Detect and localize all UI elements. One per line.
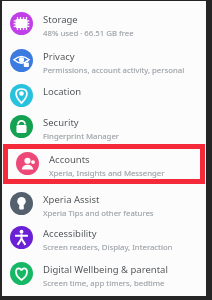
staticText: Screen readers, Display, Interaction con… — [43, 242, 202, 253]
staticText: Screen time, app timers, bedtime schedul… — [43, 278, 202, 289]
button[interactable]: Accessibility — [2, 222, 206, 258]
button[interactable]: Accounts — [8, 149, 200, 179]
button[interactable]: Location — [2, 80, 206, 111]
staticText: Accessibility — [43, 227, 97, 240]
button[interactable]: Storage — [2, 8, 206, 45]
button[interactable]: Privacy — [2, 45, 206, 80]
staticText: Accounts — [49, 153, 90, 166]
staticText: 48% used · 66.51 GB free — [43, 28, 134, 39]
button[interactable]: Xperia Assist — [2, 184, 206, 222]
staticText: Storage — [43, 13, 78, 26]
staticText: Fingerprint Manager — [43, 131, 120, 142]
staticText: Security — [43, 116, 79, 129]
staticText: Xperia Tips and other features — [43, 208, 154, 219]
staticText: Permissions, account activity, personal … — [43, 65, 202, 76]
button[interactable]: Digital Wellbeing & parental controls — [2, 258, 206, 294]
staticText: Xperia, Insights and Messenger — [49, 168, 165, 179]
button[interactable]: Security — [2, 111, 206, 144]
staticText: Digital Wellbeing & parental controls — [43, 263, 202, 276]
staticText: Privacy — [43, 50, 75, 63]
staticText: Xperia Assist — [43, 193, 100, 206]
staticText: Location — [43, 85, 82, 98]
